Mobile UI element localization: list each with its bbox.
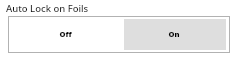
staticText: Auto Lock on Foils: [6, 2, 89, 15]
button[interactable]: Off: [11, 19, 118, 50]
staticText: On: [168, 29, 180, 39]
staticText: Off: [59, 29, 72, 39]
button[interactable]: On: [124, 19, 226, 50]
